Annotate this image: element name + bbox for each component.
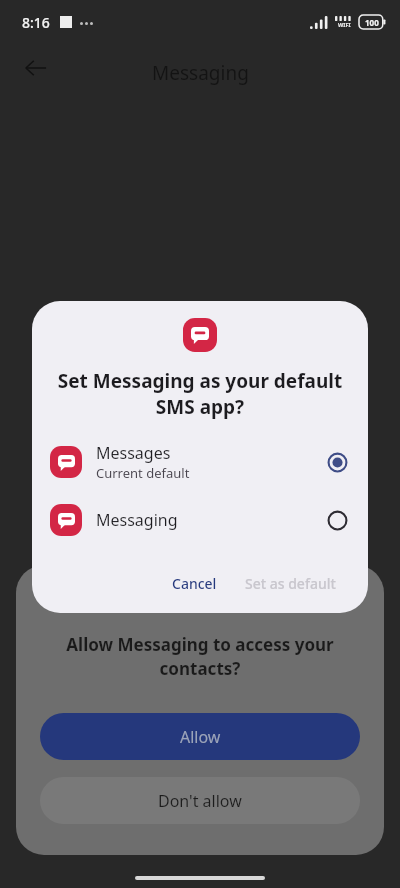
button[interactable]: Don't allow: [40, 777, 360, 824]
staticText: 8:16: [22, 13, 50, 32]
button[interactable]: Back: [12, 44, 60, 92]
staticText: 100: [365, 17, 379, 28]
button[interactable]: Cancel: [162, 566, 227, 601]
staticText: Current default: [96, 464, 190, 482]
button[interactable]: Messages: [32, 442, 368, 482]
staticText: Allow Messaging to access your contacts?: [66, 633, 334, 680]
staticText: Messaging: [152, 60, 249, 86]
staticText: Messages: [96, 442, 171, 464]
staticText: Don't allow: [158, 790, 242, 812]
staticText: WIFI: [338, 21, 351, 28]
button[interactable]: Allow: [40, 713, 360, 760]
staticText: Messaging: [96, 509, 178, 531]
staticText: Allow: [180, 726, 221, 748]
staticText: Cancel: [172, 574, 217, 593]
staticText: Set as default: [245, 574, 336, 593]
button[interactable]: Set as default: [235, 566, 346, 601]
button[interactable]: Messaging: [32, 504, 368, 536]
staticText: Set Messaging as your default SMS app?: [48, 368, 352, 420]
